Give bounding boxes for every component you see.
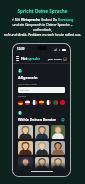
button[interactable] xyxy=(32,100,37,105)
button[interactable] xyxy=(18,141,33,155)
button[interactable] xyxy=(18,125,33,139)
staticText: 2 xyxy=(19,111,21,115)
button[interactable]: Vorname xyxy=(18,87,65,93)
button[interactable] xyxy=(18,100,23,105)
button[interactable]: Filter xyxy=(61,118,65,122)
button[interactable] xyxy=(51,125,65,139)
staticText: ⚡ Mit Flirtsprache findest Du Beratung u… xyxy=(3,17,82,37)
button[interactable] xyxy=(60,100,65,105)
staticText: Vorname xyxy=(20,89,29,92)
button[interactable] xyxy=(51,141,65,155)
button[interactable] xyxy=(35,125,49,139)
staticText: sprache xyxy=(28,57,41,61)
staticText: Jetzt Finden xyxy=(48,57,62,60)
staticText: 1 xyxy=(19,69,21,73)
staticText: Allgemein xyxy=(18,75,38,80)
button[interactable]: Profil xyxy=(63,57,67,61)
button[interactable]: Menu xyxy=(16,56,19,61)
button[interactable] xyxy=(39,100,44,105)
button[interactable] xyxy=(35,157,49,171)
button[interactable] xyxy=(53,100,58,105)
button[interactable] xyxy=(46,100,51,105)
staticText: Flirt xyxy=(21,57,28,61)
button[interactable] xyxy=(35,141,49,155)
staticText: 12:30 xyxy=(17,47,25,51)
staticText: Wie ist Dein Name? xyxy=(18,83,37,86)
button[interactable] xyxy=(51,157,65,171)
button[interactable] xyxy=(25,100,30,105)
staticText: Wähle Deinen Berater xyxy=(18,117,57,122)
staticText: Spricht Deine Sprache xyxy=(17,8,68,14)
staticText: Sprache xyxy=(18,95,26,98)
button[interactable] xyxy=(18,157,33,171)
